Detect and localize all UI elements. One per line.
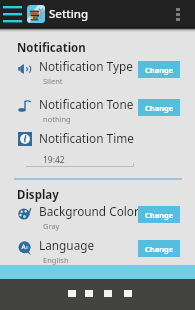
staticText: English: [43, 255, 69, 265]
staticText: Change: [145, 103, 174, 113]
button[interactable]: More options: [166, 0, 195, 27]
button[interactable]: Back: [63, 285, 81, 302]
button[interactable]: Home: [80, 285, 98, 302]
staticText: Display: [17, 187, 59, 203]
staticText: Silent: [43, 76, 63, 86]
staticText: nothing: [43, 114, 71, 124]
button[interactable]: Change: [138, 206, 180, 223]
staticText: Gray: [43, 221, 60, 231]
staticText: 19:42: [43, 154, 65, 166]
staticText: Setting: [49, 6, 89, 22]
button[interactable]: Notification Time: [0, 130, 195, 172]
button[interactable]: Recents: [99, 285, 117, 302]
button[interactable]: Menu: [119, 285, 137, 302]
staticText: Notification: [17, 40, 86, 56]
button[interactable]: Language: [0, 232, 195, 264]
button[interactable]: Change: [138, 61, 180, 78]
staticText: Change: [145, 210, 174, 220]
button[interactable]: Background Color: [0, 198, 195, 230]
staticText: Notification Type: [39, 58, 133, 74]
staticText: Background Color: [39, 203, 138, 219]
staticText: Change: [145, 244, 174, 254]
staticText: Notification Tone: [39, 96, 134, 112]
staticText: Language: [39, 237, 95, 253]
button[interactable]: Change: [138, 99, 180, 116]
button[interactable]: Menu: [0, 0, 25, 27]
button[interactable]: Notification Type: [0, 53, 195, 85]
button[interactable]: Change: [138, 240, 180, 257]
staticText: Notification Time: [39, 130, 134, 146]
staticText: Change: [145, 65, 174, 75]
button[interactable]: Notification Tone: [0, 91, 195, 123]
